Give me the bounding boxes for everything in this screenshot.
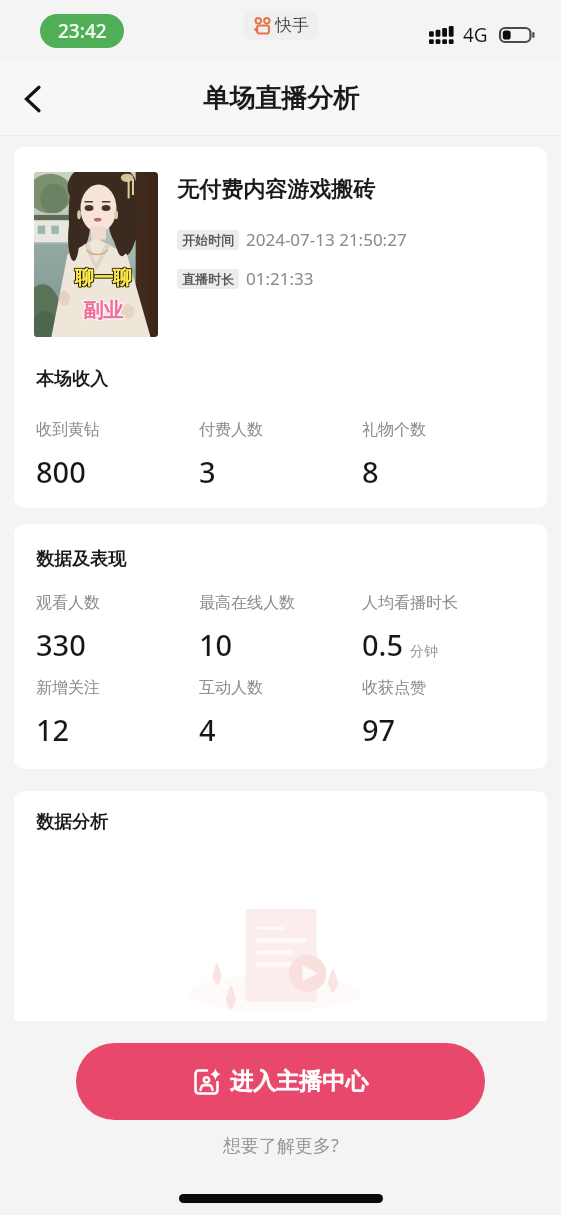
staticText: 聊一聊 [76,267,133,291]
staticText: 副业 [84,297,124,322]
staticText: 最高在线人数 [199,593,295,613]
staticText: 观看人数 [36,593,100,613]
staticText: 人均看播时长 [362,593,458,613]
staticText: 聊一聊 [76,265,133,289]
staticText: 4 [199,710,216,749]
staticText: 副业 [83,299,123,324]
staticText: 12 [36,710,70,749]
staticText: 收到黄钻 [36,420,100,440]
staticText: 2024-07-13 21:50:27 [246,228,407,251]
staticText: 分钟 [410,643,438,661]
staticText: 互动人数 [199,678,263,698]
staticText: 副业 [83,297,123,322]
staticText: 0.5 [362,625,404,664]
staticText: 聊一聊 [74,266,131,290]
staticText: 3 [199,452,216,491]
staticText: 付费人数 [199,420,263,440]
staticText: 副业 [84,299,124,324]
staticText: 聊一聊 [74,265,131,289]
staticText: 数据及表现 [36,548,126,571]
staticText: 01:21:33 [246,267,314,290]
staticText: 聊一聊 [75,266,132,290]
staticText: 8 [362,452,379,491]
staticText: 副业 [84,298,124,323]
staticText: 副业 [83,298,123,323]
staticText: 10 [199,625,233,664]
button[interactable]: 进入主播中心 [76,1043,485,1120]
staticText: 副业 [82,298,122,323]
staticText: 快手 [275,15,309,36]
staticText: 无付费内容游戏搬砖 [177,176,375,204]
staticText: 聊一聊 [74,267,131,291]
staticText: 97 [362,710,396,749]
staticText: 收获点赞 [362,678,426,698]
staticText: 330 [36,625,86,664]
staticText: 直播时长 [182,271,234,287]
staticText: 聊一聊 [75,265,132,289]
staticText: 开始时间 [182,232,234,248]
staticText: 23:42 [58,18,107,44]
staticText: 单场直播分析 [203,82,359,115]
staticText: 800 [36,452,86,491]
staticText: 新增关注 [36,678,100,698]
staticText: 数据分析 [36,811,108,834]
staticText: 聊一聊 [75,267,132,291]
staticText: 本场收入 [36,368,108,391]
button[interactable]: Back [8,74,58,124]
staticText: 副业 [82,299,122,324]
staticText: 副业 [82,297,122,322]
staticText: 进入主播中心 [230,1067,368,1096]
staticText: 想要了解更多? [223,1133,339,1158]
staticText: 4G [463,22,488,48]
staticText: 礼物个数 [362,420,426,440]
staticText: 聊一聊 [76,266,133,290]
